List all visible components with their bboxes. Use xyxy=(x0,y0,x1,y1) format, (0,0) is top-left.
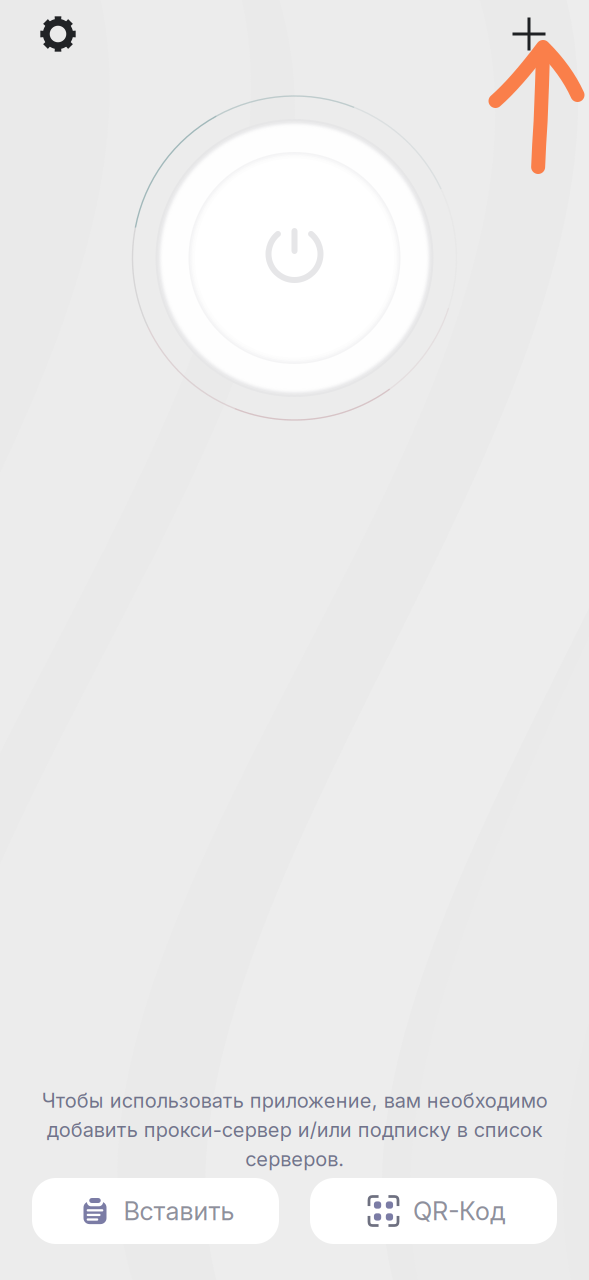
staticText: Чтобы использовать приложение, вам необх… xyxy=(41,1088,547,1171)
button[interactable]: Settings xyxy=(29,5,87,63)
button[interactable]: Вставить xyxy=(32,1178,279,1244)
button[interactable]: QR-Код xyxy=(310,1178,557,1244)
button[interactable]: Add xyxy=(500,5,558,63)
staticText: QR-Код xyxy=(413,1196,505,1226)
staticText: Вставить xyxy=(123,1196,234,1226)
